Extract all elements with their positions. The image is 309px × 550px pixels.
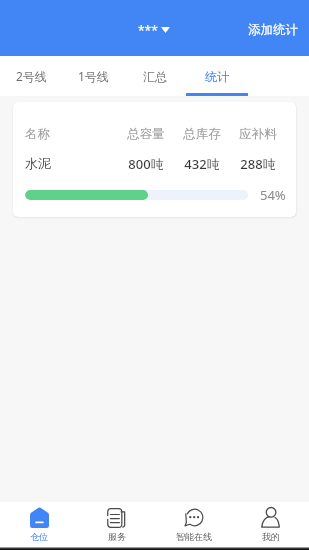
staticText: 800吨	[118, 155, 174, 173]
staticText: 我的	[262, 531, 280, 542]
other: Select line	[161, 27, 170, 33]
staticText: 服务	[108, 531, 126, 542]
button[interactable]: ***	[138, 14, 170, 42]
staticText: 2号线	[16, 68, 47, 84]
staticText: 总容量	[118, 126, 174, 142]
staticText: 添加统计	[248, 22, 298, 38]
staticText: 432吨	[174, 155, 230, 173]
staticText: 汇总	[143, 69, 167, 84]
button[interactable]: 我的	[232, 502, 309, 547]
button[interactable]: 服务	[78, 502, 155, 547]
staticText: 54%	[260, 186, 286, 204]
staticText: 名称	[25, 126, 118, 142]
staticText: 1号线	[78, 68, 109, 84]
button[interactable]: 仓位	[0, 502, 78, 547]
staticText: 统计	[205, 69, 229, 84]
button[interactable]: 2号线	[0, 56, 62, 96]
staticText: 总库存	[174, 126, 230, 142]
button[interactable]: 智能在线	[155, 502, 232, 547]
button[interactable]: 统计	[186, 56, 248, 96]
button[interactable]: 名称	[13, 102, 296, 217]
staticText: 288吨	[230, 155, 286, 173]
button[interactable]: 添加统计	[237, 14, 309, 46]
staticText: 智能在线	[176, 531, 212, 542]
button[interactable]: 1号线	[62, 56, 124, 96]
staticText: 应补料	[230, 126, 286, 142]
staticText: ***	[138, 22, 158, 38]
staticText: 仓位	[30, 531, 48, 542]
button[interactable]: 汇总	[124, 56, 186, 96]
staticText: 水泥	[25, 155, 118, 171]
